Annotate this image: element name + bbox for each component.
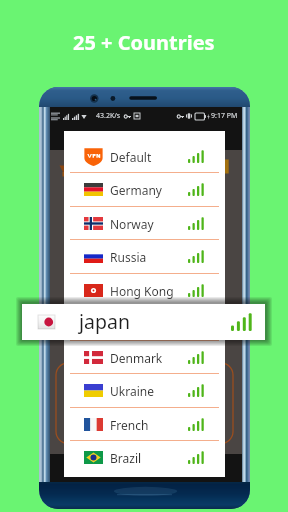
staticText: japan <box>79 308 130 335</box>
staticText: japan <box>110 316 142 332</box>
staticText: 25 + Countries <box>73 29 215 56</box>
staticText: Germany <box>110 182 162 198</box>
staticText: Denmark <box>110 350 163 366</box>
staticText: Default <box>110 149 152 165</box>
button[interactable]: Russia <box>64 240 225 273</box>
staticText: Hong Kong <box>110 283 174 299</box>
staticText: Norway <box>110 216 154 232</box>
button[interactable]: Brazil <box>64 441 225 474</box>
button[interactable]: japan <box>22 304 265 340</box>
staticText: Russia <box>110 249 147 265</box>
button[interactable]: Norway <box>64 207 225 240</box>
button[interactable]: japan <box>64 307 225 340</box>
button[interactable]: Hong Kong <box>64 274 225 307</box>
staticText: 43.2K/s <box>96 111 121 121</box>
button[interactable]: Default <box>64 140 225 173</box>
button[interactable]: Ukraine <box>64 374 225 407</box>
staticText: French <box>110 417 149 433</box>
staticText: Brazil <box>110 450 142 466</box>
button[interactable]: French <box>64 408 225 441</box>
button[interactable]: Germany <box>64 173 225 206</box>
staticText: 9:17 PM <box>211 111 238 121</box>
staticText: Ukraine <box>110 383 154 399</box>
button[interactable]: Denmark <box>64 341 225 374</box>
